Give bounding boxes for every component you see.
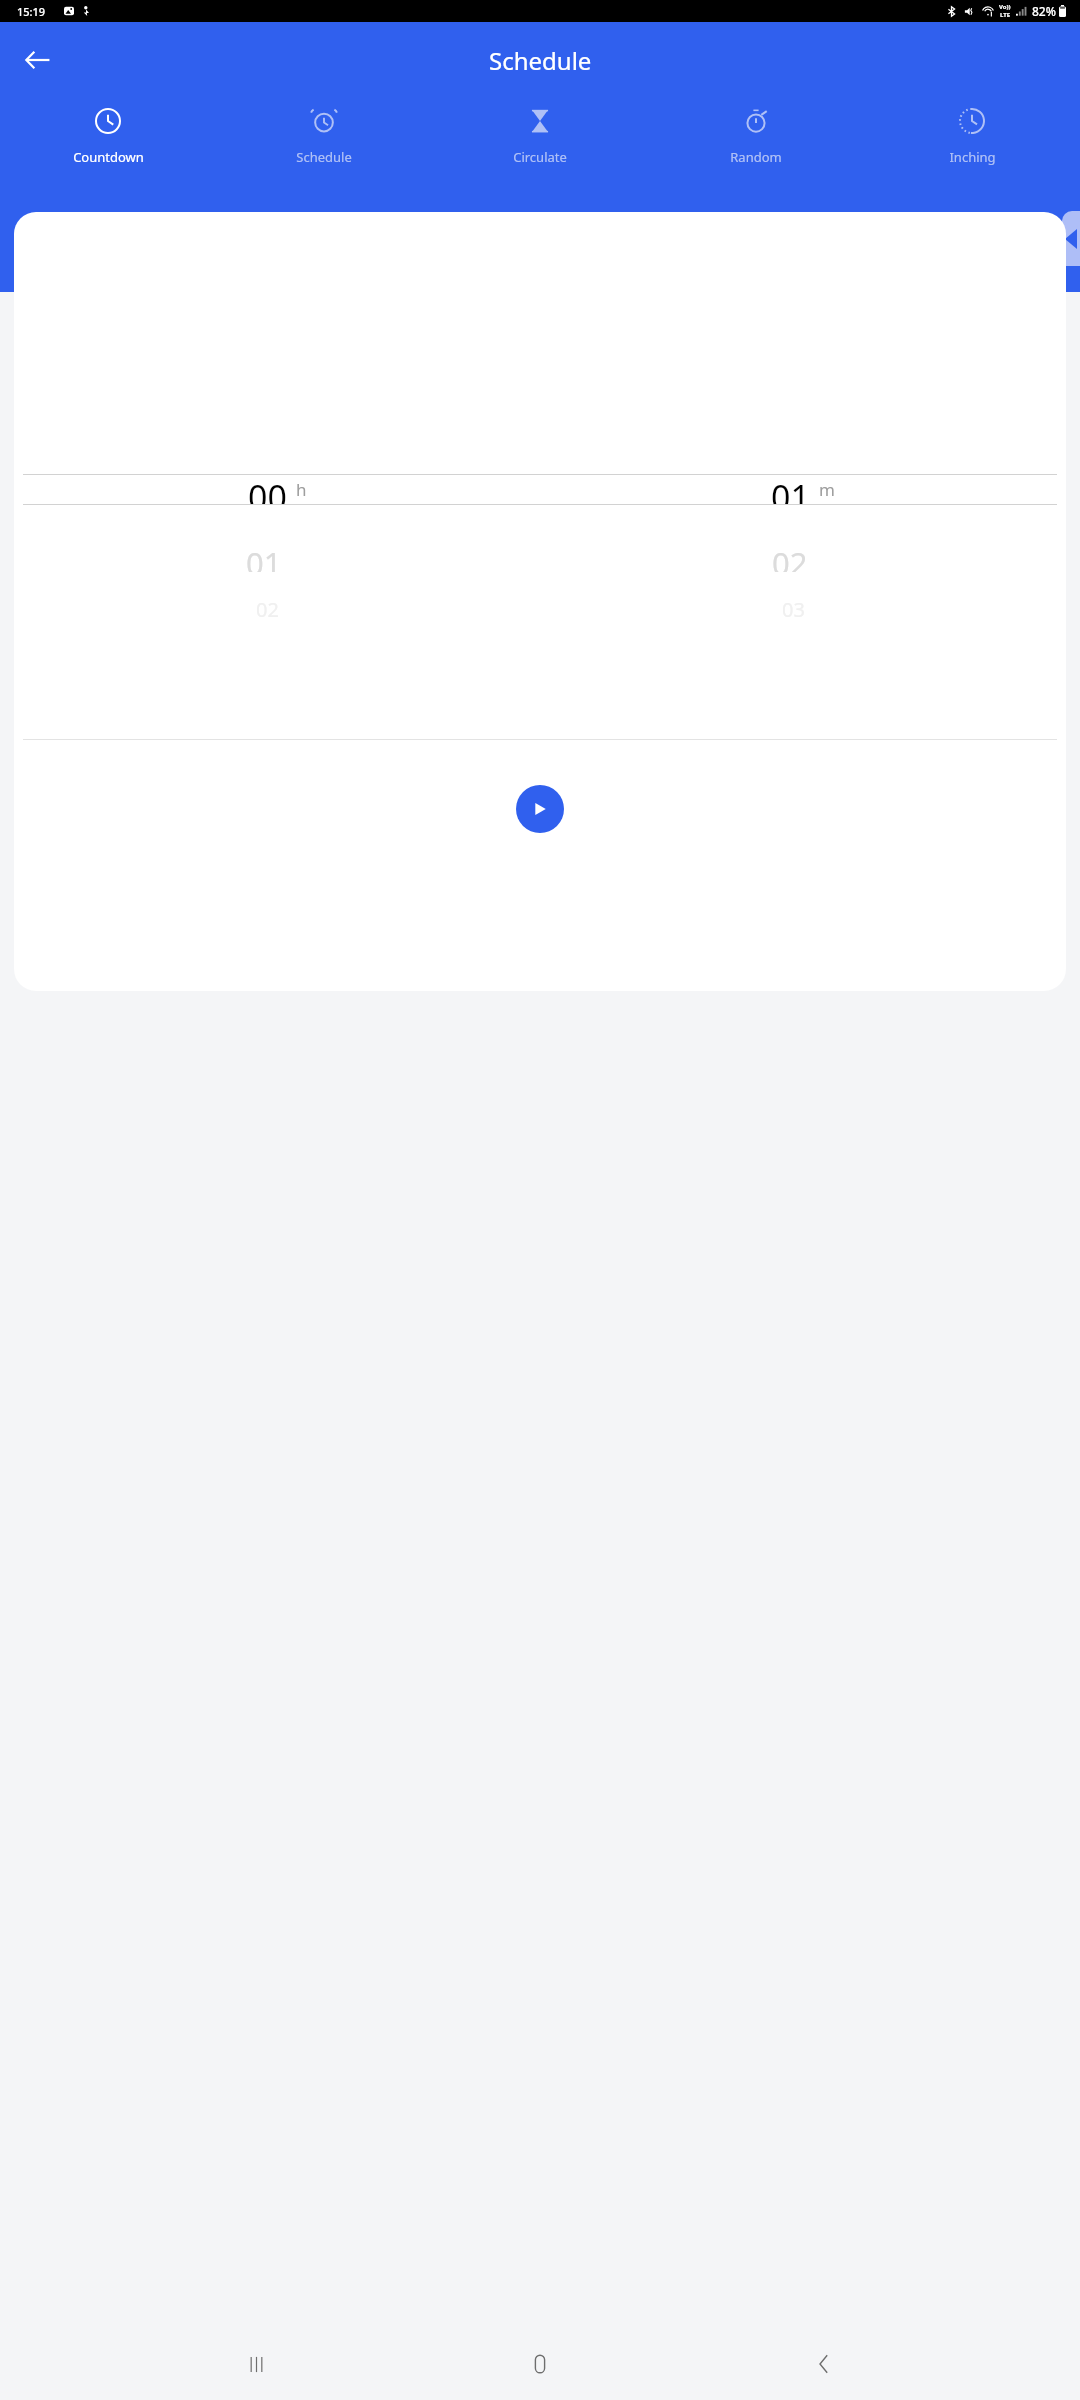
staticText: Countdown <box>73 148 144 166</box>
staticText: 15:19 <box>17 4 46 19</box>
button[interactable]: Start <box>516 785 564 833</box>
button[interactable]: Back <box>796 2336 852 2392</box>
staticText: 00 <box>248 474 287 504</box>
staticText: Random <box>730 148 782 166</box>
button[interactable]: Circulate <box>432 98 648 166</box>
button[interactable]: Home <box>512 2336 568 2392</box>
staticText: h <box>296 478 307 501</box>
button[interactable]: 01 <box>14 542 540 572</box>
staticText: 03 <box>782 596 805 620</box>
button[interactable]: Recents <box>228 2336 284 2392</box>
staticText: 01 <box>771 474 810 504</box>
staticText: m <box>819 478 835 501</box>
staticText: 82% <box>1032 3 1056 19</box>
staticText: 02 <box>772 542 808 572</box>
button[interactable]: 00 <box>14 474 540 504</box>
staticText: Circulate <box>513 148 567 166</box>
staticText: 02 <box>256 596 279 620</box>
button[interactable]: Back <box>14 36 62 84</box>
button[interactable]: Random <box>648 98 864 166</box>
staticText: Schedule <box>489 44 592 77</box>
staticText: Schedule <box>296 148 352 166</box>
staticText: 01 <box>246 542 282 572</box>
button[interactable]: Schedule <box>216 98 432 166</box>
button[interactable]: 01 <box>540 474 1066 504</box>
button[interactable]: Expand panel <box>1062 211 1080 266</box>
button[interactable]: Countdown <box>0 98 216 166</box>
button[interactable]: Inching <box>864 98 1080 166</box>
staticText: Inching <box>949 148 996 166</box>
staticText: Vo)) <box>999 3 1011 11</box>
staticText: LTE <box>1000 11 1011 19</box>
button[interactable]: 02 <box>540 542 1066 572</box>
